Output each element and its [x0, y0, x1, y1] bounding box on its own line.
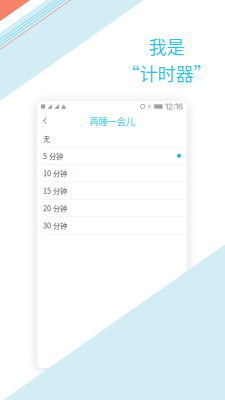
button[interactable]: 无: [37, 130, 187, 147]
button[interactable]: Back: [39, 113, 54, 128]
staticText: 我是: [148, 33, 184, 59]
staticText: 30 分钟: [43, 220, 67, 231]
button[interactable]: 10 分钟: [37, 165, 187, 182]
staticText: 5 分钟: [43, 151, 63, 161]
button[interactable]: 15 分钟: [37, 182, 187, 200]
button[interactable]: 20 分钟: [37, 200, 187, 217]
staticText: “计时器”: [121, 60, 211, 86]
staticText: 15 分钟: [43, 185, 67, 196]
staticText: 10 分钟: [43, 168, 67, 178]
button[interactable]: 30 分钟: [37, 217, 187, 234]
staticText: 12:16: [165, 102, 183, 111]
button[interactable]: 5 分钟: [37, 147, 187, 165]
staticText: 20 分钟: [43, 203, 67, 213]
staticText: 无: [43, 133, 50, 144]
staticText: 再睡一会儿: [89, 114, 134, 128]
